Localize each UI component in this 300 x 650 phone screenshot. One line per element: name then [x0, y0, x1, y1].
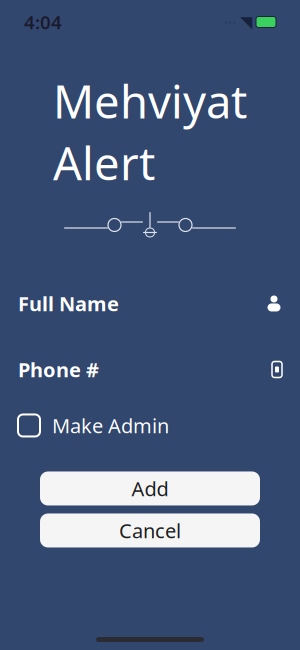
staticText: Full Name — [18, 290, 119, 317]
staticText: Mehviyat Alert — [53, 70, 247, 193]
staticText: Add — [131, 475, 168, 502]
staticText: 4:04 — [24, 10, 62, 34]
button[interactable]: Cancel — [40, 513, 260, 547]
button[interactable]: Add — [40, 471, 260, 505]
staticText: ◥ — [240, 13, 252, 31]
staticText: Phone # — [18, 356, 99, 383]
staticText: Make Admin — [52, 412, 169, 439]
button[interactable]: Phone # — [0, 347, 300, 391]
staticText: Cancel — [119, 517, 181, 544]
button[interactable]: Full Name — [0, 281, 300, 325]
button[interactable]: Make Admin — [0, 405, 300, 445]
